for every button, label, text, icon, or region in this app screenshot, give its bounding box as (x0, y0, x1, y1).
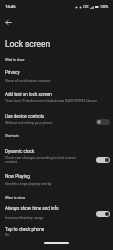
button[interactable]: Add text on lock screen (0, 89, 113, 111)
staticText: Dynamic clock (5, 149, 35, 154)
staticText: Show all notification content (5, 79, 112, 83)
staticText: 16:46 (5, 4, 16, 9)
staticText: What to show (5, 58, 25, 62)
staticText: Always show time and info (5, 206, 59, 211)
button[interactable]: Toggle (96, 119, 110, 125)
button[interactable]: Use device controls (0, 111, 113, 133)
staticText: Teun Luut. Puhelinnumero kadutessa 04007… (5, 99, 112, 103)
staticText: Now Playing (5, 174, 30, 179)
staticText: Increased battery usage (5, 216, 86, 220)
staticText: When to show (5, 196, 26, 200)
button[interactable]: Tap to check phone (0, 224, 113, 244)
button[interactable]: Toggle (96, 211, 110, 217)
button[interactable]: Always show time and info (0, 203, 113, 225)
button[interactable]: Navigate up (0, 11, 19, 33)
button[interactable]: Toggle (96, 157, 110, 163)
button[interactable]: Privacy (0, 67, 113, 89)
staticText: Privacy (5, 70, 20, 75)
staticText: 100% (100, 5, 109, 9)
button[interactable]: Now Playing (0, 171, 113, 193)
staticText: On (5, 233, 112, 237)
staticText: LTE (83, 5, 89, 9)
staticText: Tap to check phone (5, 227, 45, 232)
staticText: Add text on lock screen (5, 92, 52, 97)
staticText: Shortcuts (5, 134, 19, 138)
staticText: Identify songs playing nearby (5, 182, 112, 186)
staticText: Use device controls (5, 114, 45, 119)
staticText: Clock size changes according to lock scr… (5, 156, 86, 164)
button[interactable]: Dynamic clock (0, 146, 113, 173)
staticText: Lock screen (5, 39, 51, 49)
staticText: Without unlocking your phone (5, 121, 86, 125)
